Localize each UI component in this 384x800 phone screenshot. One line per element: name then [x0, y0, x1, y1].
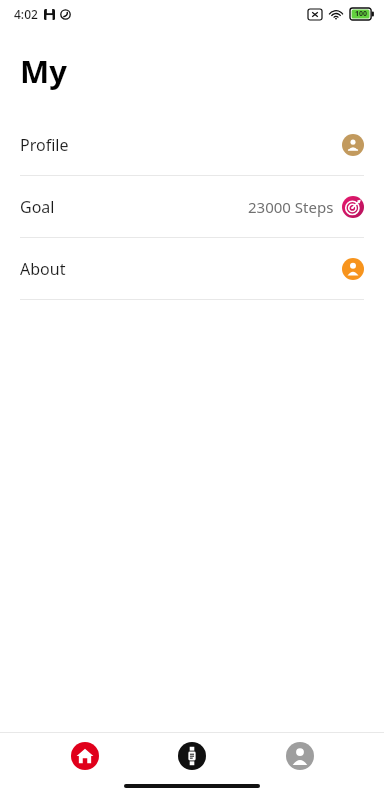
- button[interactable]: Profile: [0, 114, 384, 175]
- button[interactable]: Profile: [277, 733, 323, 778]
- button[interactable]: Goal: [0, 176, 384, 237]
- staticText: Goal: [20, 196, 55, 218]
- button[interactable]: About: [0, 238, 384, 299]
- other: About: [342, 258, 364, 280]
- button[interactable]: Home: [62, 733, 108, 778]
- staticText: My: [20, 50, 67, 92]
- staticText: About: [20, 258, 66, 280]
- staticText: Profile: [20, 134, 69, 156]
- staticText: 100: [355, 9, 368, 19]
- other: Profile: [342, 134, 364, 156]
- button[interactable]: Watch: [169, 733, 215, 778]
- staticText: 23000 Steps: [248, 197, 334, 217]
- other: Goal: [342, 196, 364, 218]
- staticText: 4:02: [14, 6, 38, 22]
